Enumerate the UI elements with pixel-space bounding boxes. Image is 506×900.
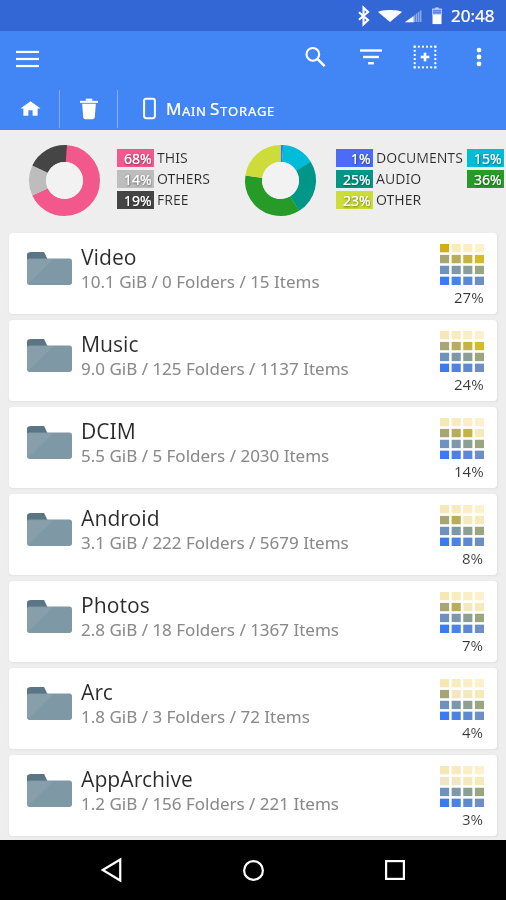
button[interactable]: More options (454, 32, 504, 82)
staticText: G (257, 102, 267, 120)
staticText: OTHER (376, 190, 422, 209)
staticText: I (191, 102, 196, 120)
staticText: A (182, 102, 191, 120)
staticText: 4% (462, 722, 484, 742)
staticText: 19% (124, 191, 152, 209)
button[interactable]: DCIM (9, 407, 497, 488)
staticText: 9.0 GiB / 125 Folders / 1137 Items (81, 357, 349, 380)
button[interactable]: Android (9, 494, 497, 575)
staticText: 3.1 GiB / 222 Folders / 5679 Items (81, 531, 349, 554)
button[interactable]: Arc (9, 668, 497, 749)
staticText: AUDIO (376, 169, 422, 188)
button[interactable]: Video (9, 233, 497, 314)
staticText: 15% (474, 149, 502, 167)
staticText: 1% (351, 149, 371, 167)
staticText: 8% (462, 548, 484, 568)
staticText: 1.8 GiB / 3 Folders / 72 Items (81, 705, 310, 728)
staticText: 14% (454, 461, 484, 481)
staticText: 27% (454, 287, 484, 307)
staticText: 3% (462, 809, 484, 829)
button[interactable]: Delete (68, 87, 109, 130)
button[interactable]: Menu (2, 34, 52, 84)
staticText: 1.2 GiB / 156 Folders / 221 Items (81, 792, 339, 815)
staticText: 14% (124, 170, 152, 188)
staticText: 36% (474, 170, 502, 188)
staticText: FREE (157, 190, 189, 209)
staticText: M (166, 97, 182, 120)
button[interactable]: Back (87, 846, 135, 894)
staticText: T (220, 102, 228, 120)
staticText: 68% (124, 149, 152, 167)
staticText: N (196, 102, 206, 120)
button[interactable]: Music (9, 320, 497, 401)
staticText: THIS (157, 148, 188, 167)
staticText: 2.8 GiB / 18 Folders / 1367 Items (81, 618, 339, 641)
staticText: Arc (81, 678, 113, 707)
staticText: 10.1 GiB / 0 Folders / 15 Items (81, 270, 320, 293)
staticText: Video (81, 243, 137, 272)
staticText: Android (81, 504, 160, 533)
staticText: E (267, 102, 275, 120)
staticText: AppArchive (81, 765, 193, 794)
staticText: S (210, 97, 220, 120)
button[interactable]: Photos (9, 581, 497, 662)
staticText: 24% (454, 374, 484, 394)
staticText: 5.5 GiB / 5 Folders / 2030 Items (81, 444, 330, 467)
button[interactable]: Sort (346, 32, 396, 82)
button[interactable]: Recents (371, 846, 419, 894)
staticText: Photos (81, 591, 150, 620)
staticText: A (248, 102, 257, 120)
button[interactable]: M (142, 87, 275, 130)
button[interactable]: Select all (400, 32, 450, 82)
staticText: DOCUMENTS (376, 148, 463, 167)
staticText: 23% (343, 191, 371, 209)
button[interactable]: Search (290, 32, 340, 82)
staticText: O (228, 102, 239, 120)
staticText: 20:48 (451, 4, 495, 27)
button[interactable]: Home (229, 846, 277, 894)
staticText: Music (81, 330, 139, 359)
staticText: OTHERS (157, 169, 210, 188)
staticText: DCIM (81, 417, 136, 446)
button[interactable]: AppArchive (9, 755, 497, 836)
staticText: 7% (462, 635, 484, 655)
button[interactable]: Home (10, 87, 51, 130)
staticText: R (239, 102, 248, 120)
staticText: 25% (343, 170, 371, 188)
